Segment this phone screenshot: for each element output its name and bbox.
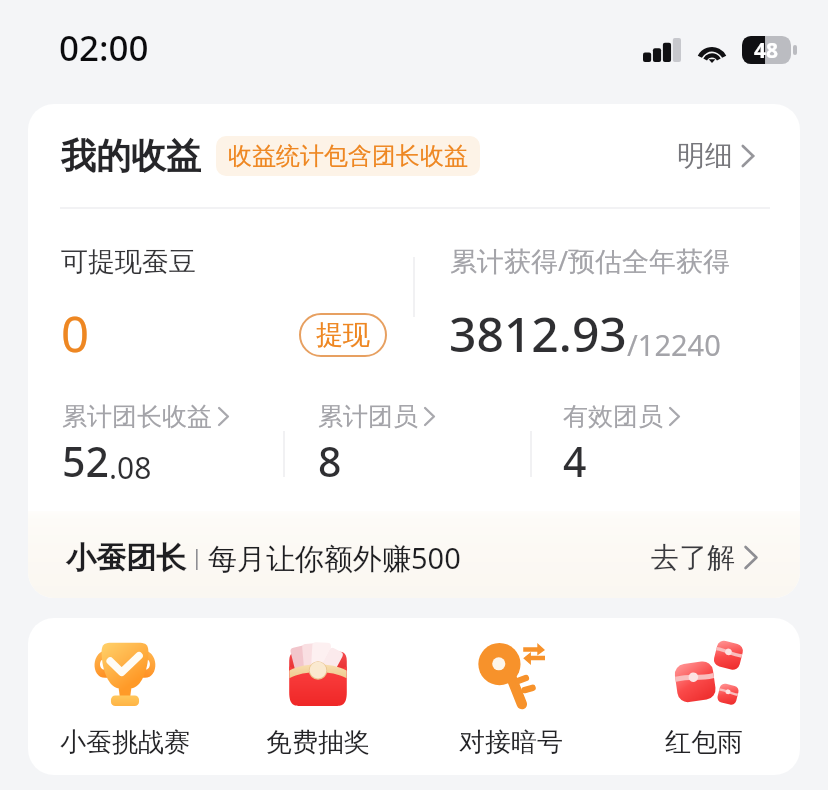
staticText: 红包雨 bbox=[665, 726, 743, 759]
staticText: | bbox=[191, 543, 203, 572]
staticText: 52 bbox=[62, 433, 109, 489]
staticText: 明细 bbox=[677, 138, 733, 173]
staticText: 每月让你额外赚500 bbox=[208, 538, 461, 578]
button[interactable]: 免费抽奖 bbox=[221, 618, 414, 775]
staticText: 可提现蚕豆 bbox=[61, 245, 196, 279]
button[interactable]: 我的收益 bbox=[28, 104, 800, 207]
button[interactable]: 提现 bbox=[299, 313, 387, 357]
staticText: .08 bbox=[109, 447, 152, 488]
button[interactable]: 红包雨 bbox=[607, 618, 800, 775]
button[interactable]: 小蚕挑战赛 bbox=[28, 618, 221, 775]
staticText: 有效团员 bbox=[563, 401, 663, 432]
staticText: /12240 bbox=[627, 325, 721, 364]
staticText: 8 bbox=[318, 433, 342, 489]
staticText: 去了解 bbox=[651, 540, 735, 575]
button[interactable]: 累计团员 bbox=[318, 401, 528, 489]
button[interactable]: 小蚕团长 bbox=[28, 511, 800, 598]
staticText: 3812.93 bbox=[449, 301, 627, 366]
staticText: 提现 bbox=[316, 318, 370, 352]
staticText: 4 bbox=[563, 433, 587, 489]
staticText: 累计团员 bbox=[318, 401, 418, 432]
button[interactable]: 对接暗号 bbox=[414, 618, 607, 775]
staticText: 累计获得/预估全年获得 bbox=[450, 242, 731, 279]
staticText: 对接暗号 bbox=[459, 726, 563, 759]
staticText: 0 bbox=[61, 300, 90, 367]
staticText: 小蚕团长 bbox=[66, 539, 186, 577]
button[interactable]: 有效团员 bbox=[563, 401, 773, 489]
staticText: 收益统计包含团长收益 bbox=[228, 141, 468, 171]
staticText: 免费抽奖 bbox=[266, 726, 370, 759]
button[interactable]: 累计团长收益 bbox=[62, 401, 287, 489]
staticText: 小蚕挑战赛 bbox=[60, 726, 190, 759]
staticText: 02:00 bbox=[59, 24, 149, 72]
staticText: 累计团长收益 bbox=[62, 401, 212, 432]
staticText: 我的收益 bbox=[61, 134, 201, 178]
staticText: 48 bbox=[754, 36, 779, 64]
